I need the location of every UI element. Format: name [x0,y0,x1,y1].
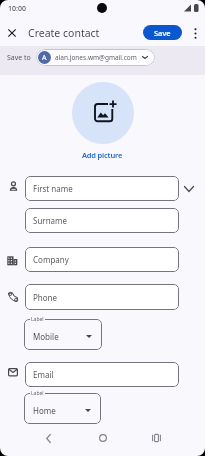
staticText: A [42,53,47,63]
button[interactable]: Surname [25,208,179,233]
button[interactable]: Add picture [82,150,123,160]
button[interactable]: A [36,49,155,66]
button[interactable] [148,430,164,446]
staticText: 10:00 [8,4,26,14]
button[interactable]: Mobile [24,319,102,350]
staticText: Phone [33,292,58,303]
button[interactable] [72,82,134,144]
button[interactable] [40,430,56,446]
button[interactable] [187,26,203,40]
staticText: Add picture [82,150,123,160]
staticText: alan.jones.wm@gmail.com [55,53,137,62]
staticText: Surname [33,215,68,226]
staticText: Mobile [33,331,59,342]
staticText: Create contact [28,26,100,40]
staticText: Save [154,28,171,38]
button[interactable]: Company [25,247,179,272]
staticText: Email [33,369,54,380]
staticText: Save to [7,53,31,63]
button[interactable]: Email [25,362,179,387]
staticText: Label [31,316,44,323]
staticText: Company [33,254,69,265]
staticText: First name [33,183,73,194]
button[interactable]: Save [143,25,182,40]
staticText: Home [33,405,56,416]
button[interactable]: First name [25,176,179,201]
button[interactable] [3,24,21,42]
button[interactable]: Home [24,393,101,424]
button[interactable]: Phone [25,284,179,310]
button[interactable] [95,430,111,446]
staticText: Label [31,390,44,397]
